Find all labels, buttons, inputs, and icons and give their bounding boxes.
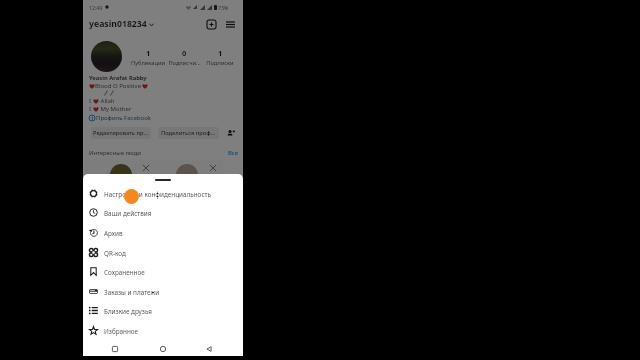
button[interactable]: Home bbox=[155, 341, 171, 357]
button[interactable]: Все bbox=[228, 149, 239, 157]
button[interactable]: Dismiss suggestion bbox=[143, 165, 149, 171]
staticText: Интересные люди bbox=[89, 149, 141, 157]
staticText: Поделиться проф... bbox=[161, 129, 216, 137]
staticText: Избранное bbox=[104, 327, 139, 336]
button[interactable]: QR-код bbox=[83, 243, 243, 262]
staticText: Подписки bbox=[206, 59, 234, 67]
button[interactable]: Dismiss suggestion bbox=[210, 165, 216, 171]
button[interactable] bbox=[85, 159, 157, 204]
button[interactable]: Избранное bbox=[83, 321, 243, 340]
button[interactable]: Create bbox=[205, 18, 217, 30]
staticText: 12:49 bbox=[89, 4, 103, 11]
staticText: I bbox=[89, 97, 93, 105]
staticText: Близкие друзья bbox=[104, 307, 152, 316]
staticText: yeasin018234 bbox=[89, 18, 147, 30]
button[interactable] bbox=[151, 159, 223, 204]
button[interactable]: Заказы и платежи bbox=[83, 282, 243, 301]
staticText: Allah bbox=[99, 97, 115, 105]
staticText: Настройки и конфиденциальность bbox=[104, 190, 211, 199]
button[interactable]: Архив bbox=[83, 223, 243, 242]
staticText: My Mother bbox=[99, 105, 132, 113]
staticText: 73% bbox=[218, 4, 229, 11]
button[interactable]: Редактировать пр... bbox=[91, 127, 151, 139]
button[interactable]: Back bbox=[201, 341, 217, 357]
staticText: Редактировать пр... bbox=[93, 129, 149, 137]
staticText: I bbox=[89, 105, 93, 113]
button[interactable]: Настройки и конфиденциальность bbox=[83, 184, 243, 203]
staticText: Сохраненное bbox=[104, 268, 145, 277]
button[interactable]: Discover people bbox=[225, 127, 236, 138]
button[interactable]: Menu bbox=[224, 18, 236, 30]
button[interactable]: Близкие друзья bbox=[83, 301, 243, 320]
staticText: 1 bbox=[218, 48, 223, 58]
staticText: Yeasin Arafat Rabby bbox=[89, 74, 147, 82]
staticText: QR-код bbox=[104, 249, 126, 258]
staticText: Ваши действия bbox=[104, 209, 152, 218]
staticText: Профиль Facebook bbox=[96, 114, 152, 122]
staticText: Blood O Positive bbox=[95, 82, 142, 90]
staticText: Архив bbox=[104, 229, 123, 238]
staticText: Публикации bbox=[131, 59, 165, 67]
staticText: 1 bbox=[146, 48, 151, 58]
button[interactable]: Ваши действия bbox=[83, 203, 243, 222]
staticText: Заказы и платежи bbox=[104, 288, 160, 297]
staticText: Подписчи... bbox=[168, 59, 201, 67]
staticText: 0 bbox=[182, 48, 187, 58]
button[interactable]: Recents bbox=[107, 341, 123, 357]
button[interactable]: Поделиться проф... bbox=[158, 127, 219, 139]
button[interactable]: Сохраненное bbox=[83, 262, 243, 281]
staticText: Все bbox=[228, 149, 239, 157]
